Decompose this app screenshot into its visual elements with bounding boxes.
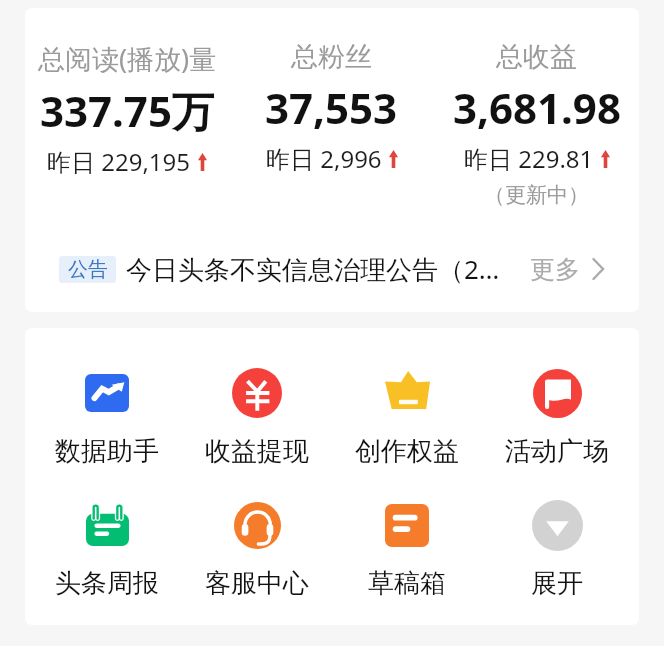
staticText: 昨日 229,195 xyxy=(47,145,191,178)
button[interactable]: 总收益 xyxy=(434,8,639,208)
staticText: 展开 xyxy=(531,567,583,600)
button[interactable]: 总粉丝 xyxy=(229,8,434,175)
staticText: 收益提现 xyxy=(205,435,309,468)
button[interactable]: 草稿箱 xyxy=(332,497,482,600)
staticText: 头条周报 xyxy=(55,567,159,600)
other: 草稿箱 xyxy=(385,504,429,547)
other: 客服中心 xyxy=(234,502,281,549)
button[interactable]: 客服中心 xyxy=(182,497,332,600)
staticText: 总阅读(播放)量 xyxy=(38,40,217,77)
other: 收益提现 xyxy=(232,368,282,418)
button[interactable]: 公告 xyxy=(25,240,639,298)
button[interactable]: 收益提现 xyxy=(182,365,332,468)
staticText: 客服中心 xyxy=(205,567,309,600)
staticText: 今日头条不实信息治理公告（2… xyxy=(126,251,500,287)
staticText: 昨日 229.81 xyxy=(464,142,594,175)
staticText: 草稿箱 xyxy=(368,567,446,600)
other: 数据助手 xyxy=(85,374,129,412)
button[interactable]: 活动广场 xyxy=(482,365,632,468)
other: 头条周报 xyxy=(86,504,129,546)
other: 展开 xyxy=(532,500,583,551)
button[interactable]: 总阅读(播放)量 xyxy=(25,8,229,178)
staticText: 数据助手 xyxy=(55,435,159,468)
button[interactable]: 数据助手 xyxy=(32,365,182,468)
staticText: 337.75万 xyxy=(40,82,214,139)
staticText: （更新中） xyxy=(484,182,589,208)
staticText: 3,681.98 xyxy=(453,79,621,136)
button[interactable]: 展开 xyxy=(482,497,632,600)
button[interactable]: 头条周报 xyxy=(32,497,182,600)
other: 活动广场 xyxy=(533,369,582,418)
staticText: 更多 xyxy=(530,254,580,285)
other: 创作权益 xyxy=(385,371,430,409)
staticText: 公告 xyxy=(68,257,108,282)
staticText: 总收益 xyxy=(496,40,577,74)
staticText: 创作权益 xyxy=(355,435,459,468)
staticText: 活动广场 xyxy=(505,435,609,468)
staticText: 37,553 xyxy=(265,79,398,136)
staticText: 总粉丝 xyxy=(291,40,372,74)
staticText: 昨日 2,996 xyxy=(266,142,382,175)
button[interactable]: 创作权益 xyxy=(332,365,482,468)
